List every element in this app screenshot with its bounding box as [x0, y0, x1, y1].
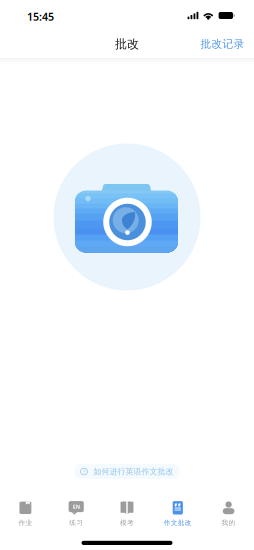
button[interactable]: 模考: [102, 479, 152, 540]
staticText: 作业: [18, 519, 32, 527]
staticText: EN: [73, 503, 80, 510]
staticText: 作文批改: [164, 519, 192, 527]
staticText: 模考: [120, 519, 134, 527]
staticText: 练习: [69, 519, 83, 527]
staticText: 15:45: [27, 9, 54, 24]
button[interactable]: 作文批改: [152, 479, 203, 540]
staticText: 我的: [222, 519, 236, 527]
button[interactable]: ?: [74, 464, 180, 479]
staticText: 如何进行英语作文批改: [93, 467, 173, 476]
button[interactable]: EN: [51, 479, 102, 540]
staticText: 批改记录: [200, 37, 244, 50]
button[interactable]: 批改记录: [196, 30, 248, 57]
button[interactable]: 我的: [203, 479, 254, 540]
staticText: 批改: [115, 37, 139, 51]
button[interactable]: 作业: [0, 479, 51, 540]
staticText: ?: [83, 468, 85, 475]
